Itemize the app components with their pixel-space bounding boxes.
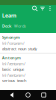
button[interactable]: Sort [39,5,45,11]
button[interactable]: Antonym [0,53,56,85]
button[interactable]: More [47,5,53,11]
staticText: Deck [2,23,11,29]
staticText: (n) /ˈæntənɪm/ [2,73,25,78]
button[interactable]: Search [32,5,38,11]
staticText: basic unique [2,66,24,72]
staticText: Words [14,23,26,29]
button[interactable]: Recents [40,91,47,98]
button[interactable]: Deck [2,23,11,29]
staticText: serious teach [2,78,26,83]
staticText: (n) /ˈæntənɪm/ [2,61,25,66]
staticText: abstract noun study [2,46,37,51]
button[interactable]: Synonym [0,33,56,53]
staticText: Synonym [2,34,20,40]
button[interactable]: Words [14,23,26,29]
button[interactable]: Home [24,91,31,98]
staticText: Antonym [2,55,21,60]
staticText: (n) /ˈsɪnənɪm/ [2,41,24,46]
button[interactable]: Back [9,91,16,98]
staticText: Learn [2,12,16,19]
